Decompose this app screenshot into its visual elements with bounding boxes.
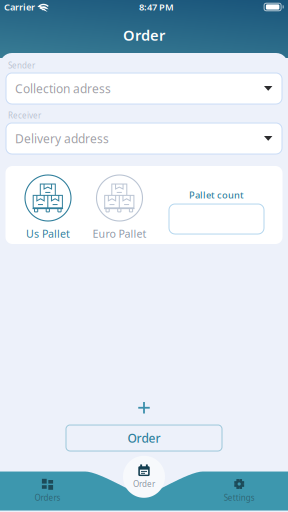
staticText: Euro Pallet <box>92 226 146 241</box>
button[interactable]: Orders <box>12 471 82 503</box>
button[interactable]: Order <box>123 456 165 498</box>
staticText: Settings <box>224 492 255 503</box>
staticText: Orders <box>34 492 60 503</box>
button[interactable]: Settings <box>204 471 274 503</box>
staticText: Us Pallet <box>26 226 70 241</box>
button[interactable]: Euro Pallet <box>92 174 146 241</box>
button[interactable]: Us Pallet <box>24 174 71 241</box>
staticText: Pallet count <box>189 189 244 201</box>
staticText: Sender <box>8 60 35 71</box>
button[interactable]: Delivery address <box>6 123 282 154</box>
staticText: Receiver <box>8 110 41 121</box>
staticText: Carrier <box>4 1 35 13</box>
staticText: 8:47 PM <box>139 1 174 13</box>
button[interactable]: Add pallet <box>132 396 156 419</box>
button[interactable]: Collection adress <box>6 73 282 104</box>
button[interactable]: Order <box>66 425 222 451</box>
staticText: Collection adress <box>15 80 111 96</box>
staticText: Order <box>127 430 160 446</box>
staticText: Order <box>133 478 155 489</box>
staticText: Delivery address <box>15 130 109 146</box>
staticText: Order <box>123 25 165 45</box>
